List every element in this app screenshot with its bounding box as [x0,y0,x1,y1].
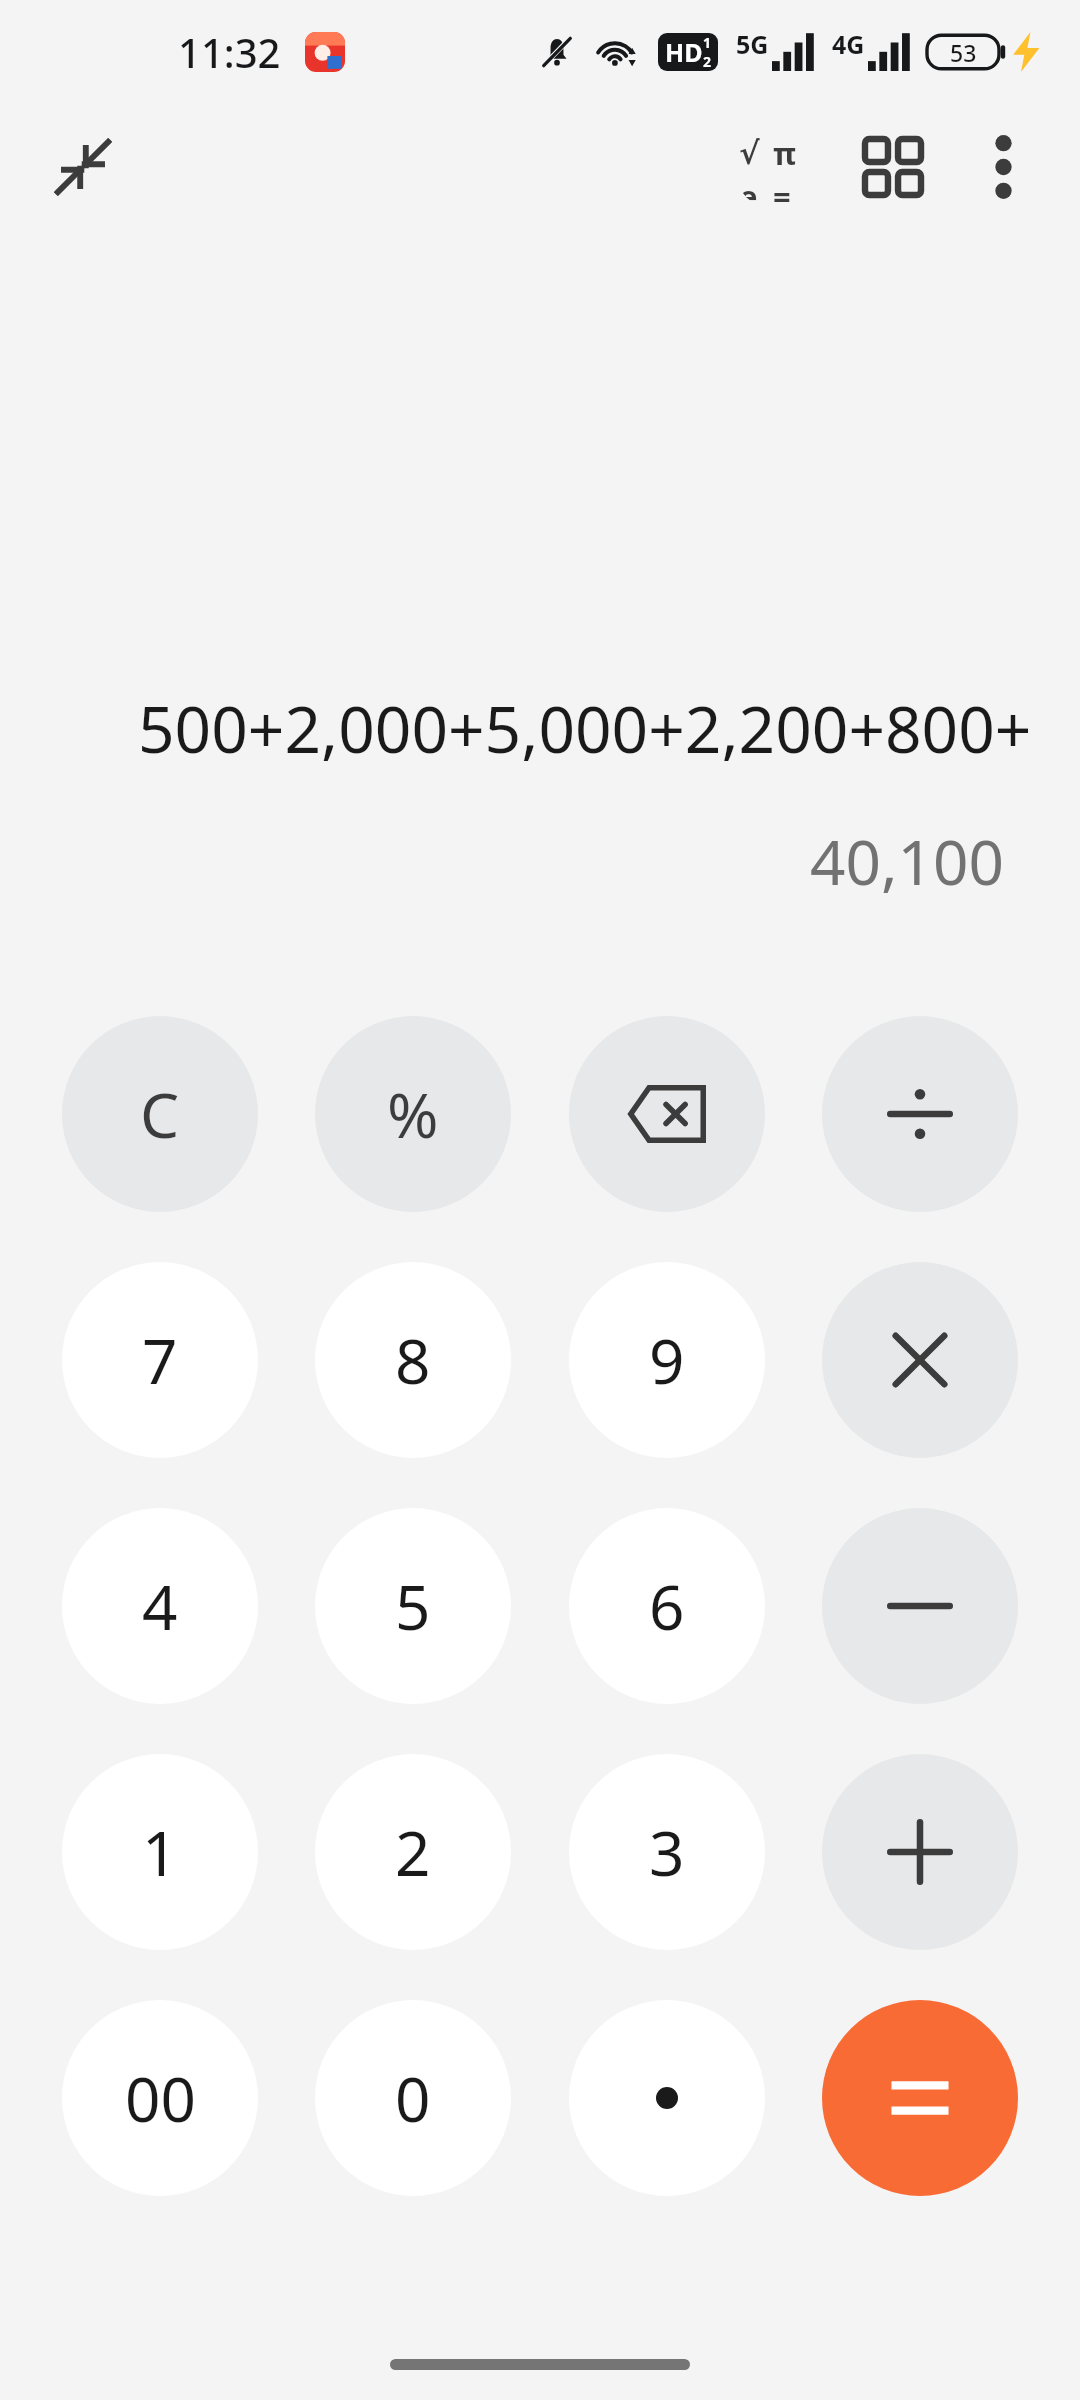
button[interactable]: 2 [315,1754,511,1950]
button[interactable]: 9 [569,1262,765,1458]
staticText: 5G [736,27,769,61]
staticText: = [773,175,791,202]
staticText: 6 [649,1564,685,1648]
button[interactable]: Collapse display [44,128,122,206]
staticText: 5 [395,1564,431,1648]
staticText: HD [665,35,703,69]
button[interactable]: 7 [62,1262,258,1458]
staticText: 8 [395,1318,431,1402]
button[interactable]: Converters [850,124,936,210]
button[interactable]: Equals [822,2000,1018,2196]
staticText: 4G [832,27,865,61]
staticText: 2 [703,52,712,71]
button[interactable]: 6 [569,1508,765,1704]
staticText: 40,100 [810,819,1004,903]
button[interactable]: More options [962,126,1044,208]
button[interactable]: 3 [569,1754,765,1950]
staticText: 500+2,000+5,000+2,200+800+ [138,685,1032,772]
staticText: 53 [950,37,977,68]
button[interactable]: 8 [315,1262,511,1458]
staticText: 7 [142,1318,178,1402]
button[interactable]: Multiply [822,1262,1018,1458]
staticText: % [387,1072,439,1156]
button[interactable]: Decimal point [569,2000,765,2196]
staticText: C [140,1072,180,1156]
staticText: √ [739,135,760,171]
staticText: 00 [125,2056,196,2140]
button[interactable]: 1 [62,1754,258,1950]
button[interactable]: 500+2,000+5,000+2,200+800+ [0,680,1080,776]
button[interactable]: Scientific calculator [734,124,820,210]
staticText: 1 [703,33,712,52]
staticText: π [773,132,797,174]
staticText: 11:32 [178,25,281,79]
button[interactable]: % [315,1016,511,1212]
button[interactable]: Plus [822,1754,1018,1950]
button[interactable]: Minus [822,1508,1018,1704]
button[interactable]: 00 [62,2000,258,2196]
staticText: 2 [395,1810,431,1894]
staticText: 0 [395,2056,431,2140]
staticText: 3 [649,1810,685,1894]
button[interactable]: 0 [315,2000,511,2196]
button[interactable]: Divide [822,1016,1018,1212]
staticText: 4 [142,1564,178,1648]
button[interactable]: 4 [62,1508,258,1704]
button[interactable]: C [62,1016,258,1212]
button[interactable]: 40,100 [0,818,1004,904]
staticText: 9 [649,1318,685,1402]
button[interactable]: 5 [315,1508,511,1704]
staticText: 1 [142,1810,178,1894]
button[interactable]: Backspace [569,1016,765,1212]
staticText: e [739,175,758,202]
